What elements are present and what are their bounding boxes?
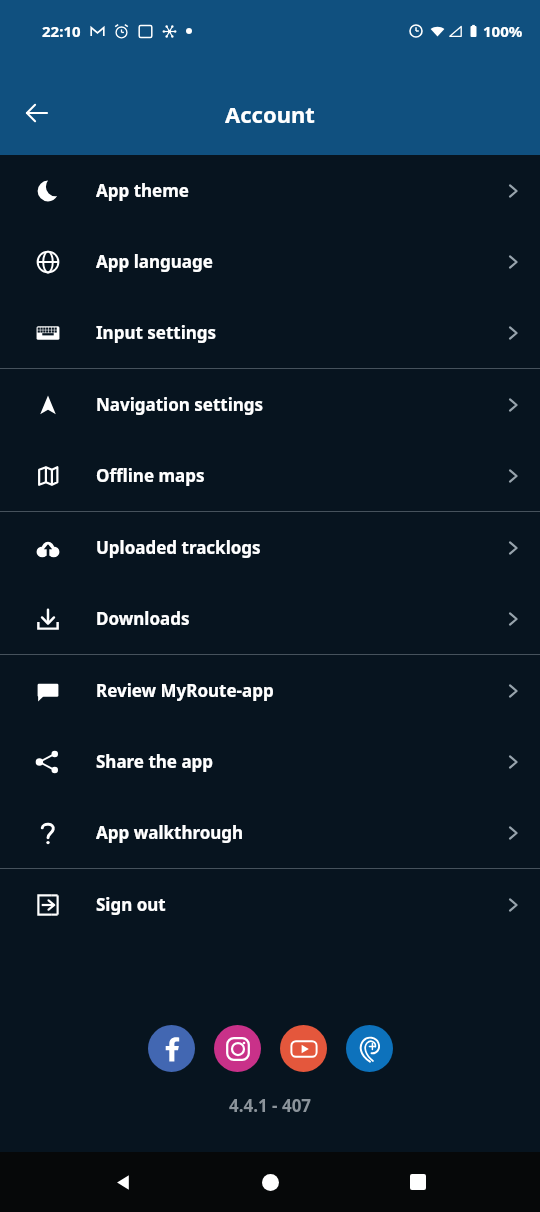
button[interactable]: MyRoute app (346, 1025, 393, 1072)
staticText: Offline maps (96, 464, 205, 487)
button[interactable]: Downloads (0, 583, 540, 654)
staticText: Sign out (96, 893, 166, 916)
staticText: Downloads (96, 607, 190, 630)
staticText: Review MyRoute-app (96, 679, 274, 702)
button[interactable]: Back (98, 1157, 148, 1207)
button[interactable]: Facebook (148, 1025, 195, 1072)
button[interactable]: Back (12, 88, 62, 138)
staticText: 4.4.1 - 407 (0, 1094, 540, 1117)
button[interactable]: Input settings (0, 297, 540, 368)
button[interactable]: App walkthrough (0, 797, 540, 868)
button[interactable]: Recents (393, 1157, 443, 1207)
staticText: App walkthrough (96, 821, 244, 844)
staticText: Input settings (96, 321, 217, 344)
button[interactable]: Home (245, 1157, 295, 1207)
staticText: Navigation settings (96, 393, 264, 416)
button[interactable]: Offline maps (0, 440, 540, 511)
button[interactable]: Uploaded tracklogs (0, 512, 540, 583)
staticText: Account (225, 99, 315, 129)
staticText: App theme (96, 179, 189, 202)
button[interactable]: App language (0, 226, 540, 297)
button[interactable]: Sign out (0, 869, 540, 940)
button[interactable]: App theme (0, 155, 540, 226)
button[interactable]: Instagram (214, 1025, 261, 1072)
button[interactable]: Share the app (0, 726, 540, 797)
staticText: App language (96, 250, 213, 273)
button[interactable]: Navigation settings (0, 369, 540, 440)
button[interactable]: Review MyRoute-app (0, 655, 540, 726)
staticText: 100% (483, 21, 523, 41)
staticText: 22:10 (42, 21, 81, 41)
button[interactable]: YouTube (280, 1025, 327, 1072)
staticText: Uploaded tracklogs (96, 536, 261, 559)
staticText: Share the app (96, 750, 214, 773)
